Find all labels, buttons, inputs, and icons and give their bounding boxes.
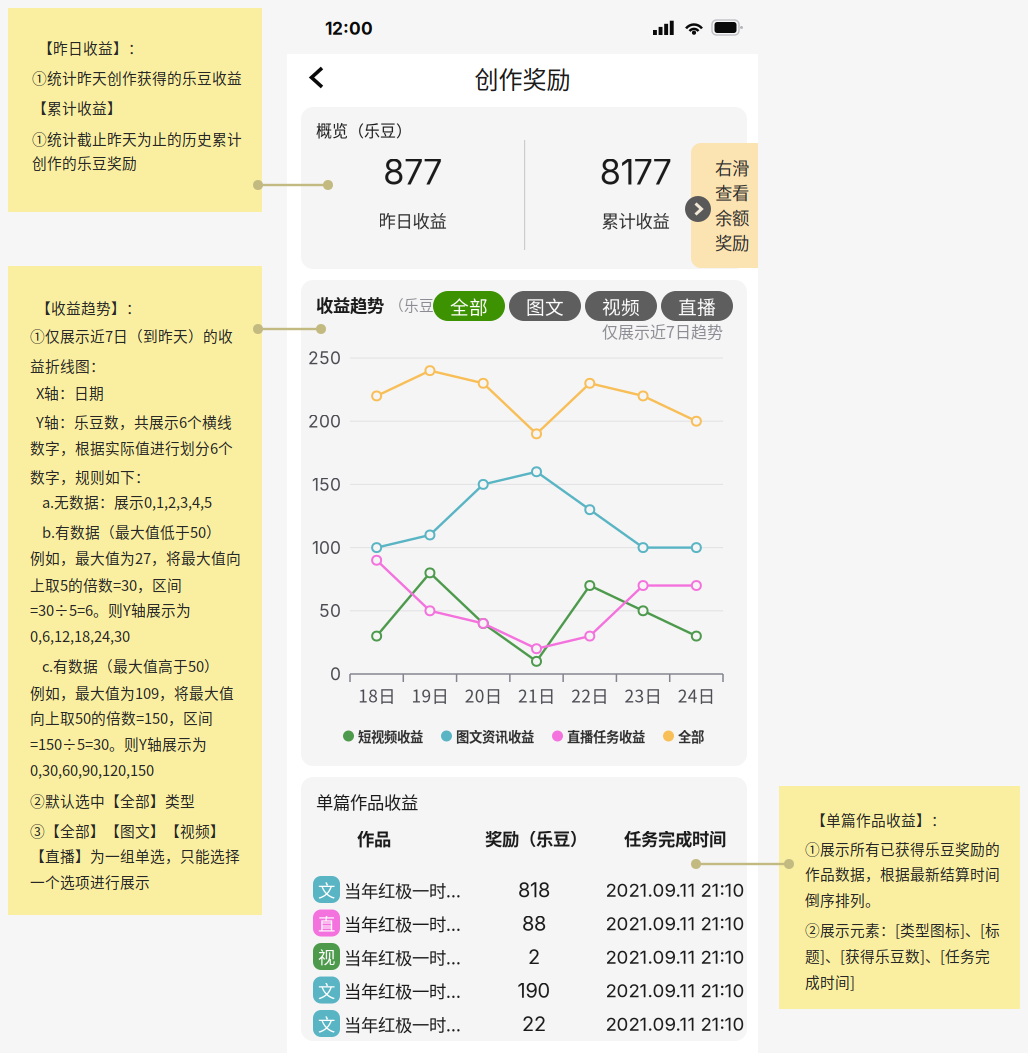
staticText: 当年红极一时... xyxy=(344,877,461,903)
staticText: 任务完成时间 xyxy=(624,825,726,851)
staticText: 收益趋势 xyxy=(316,292,384,317)
staticText: 仅展示近7日趋势 xyxy=(602,319,723,343)
staticText: 上取5的倍数=30，区间 xyxy=(30,574,182,595)
staticText: 2021.09.11 21:10 xyxy=(605,1013,744,1035)
button[interactable]: 全部 xyxy=(433,291,505,321)
staticText: 余额 xyxy=(715,204,749,230)
staticText: ②展示元素：[类型图标]、[标 xyxy=(805,919,1000,940)
staticText: 创作奖励 xyxy=(474,61,570,95)
staticText: a.无数据：展示0,1,2,3,4,5 xyxy=(30,491,212,512)
staticText: 190 xyxy=(517,978,550,1003)
staticText: 图文 xyxy=(526,292,564,319)
staticText: 数字，规则如下： xyxy=(30,466,150,487)
staticText: 一个选项进行展示 xyxy=(30,871,150,892)
staticText: X轴：日期 xyxy=(30,382,104,403)
staticText: 19日 xyxy=(411,682,448,708)
staticText: 18日 xyxy=(358,682,395,708)
staticText: 2021.09.11 21:10 xyxy=(605,946,744,968)
staticText: 877 xyxy=(383,151,441,193)
staticText: 查看 xyxy=(715,179,749,205)
staticText: 作品 xyxy=(357,825,391,851)
staticText: 22日 xyxy=(571,682,608,708)
staticText: 21日 xyxy=(518,682,555,708)
staticText: 创作的乐豆奖励 xyxy=(32,152,137,173)
staticText: b.有数据（最大值低于50） xyxy=(30,521,221,542)
staticText: （乐豆） xyxy=(389,294,449,315)
staticText: 0 xyxy=(330,663,341,684)
staticText: 作品数据，根据最新结算时间 xyxy=(805,863,1000,884)
staticText: 100 xyxy=(312,537,341,558)
staticText: 例如，最大值为27，将最大值向 xyxy=(30,547,241,568)
staticText: c.有数据（最大值高于50） xyxy=(30,655,219,676)
staticText: 0,6,12,18,24,30 xyxy=(30,625,130,646)
staticText: 当年红极一时... xyxy=(344,911,461,936)
staticText: 2021.09.11 21:10 xyxy=(605,912,744,935)
button[interactable]: 视频 xyxy=(585,291,657,321)
staticText: 视 xyxy=(318,944,335,969)
staticText: 当年红极一时... xyxy=(344,1011,461,1037)
staticText: 12:00 xyxy=(325,18,373,39)
staticText: 直播 xyxy=(678,292,716,319)
button[interactable]: 右滑查看余额奖励 xyxy=(691,143,758,268)
staticText: 22 xyxy=(522,1012,546,1036)
staticText: 数字，根据实际值进行划分6个 xyxy=(30,437,233,458)
staticText: 累计收益 xyxy=(601,207,669,233)
staticText: ①仅展示近7日（到昨天）的收 xyxy=(30,325,233,346)
staticText: 【收益趋势】： xyxy=(30,297,141,318)
staticText: 【累计收益】 xyxy=(32,97,122,118)
staticText: 全部 xyxy=(450,292,488,319)
staticText: 向上取50的倍数=150，区间 xyxy=(30,707,213,728)
staticText: 【直播】为一组单选，只能选择 xyxy=(30,845,240,866)
staticText: 2021.09.11 21:10 xyxy=(605,879,744,901)
staticText: 24日 xyxy=(678,682,715,708)
staticText: ①统计截止昨天为止的历史累计 xyxy=(32,128,242,149)
staticText: 文 xyxy=(318,977,335,1003)
staticText: ①统计昨天创作获得的乐豆收益 xyxy=(32,67,242,88)
staticText: 818 xyxy=(518,878,550,902)
staticText: 图文资讯收益 xyxy=(456,726,534,746)
staticText: 2021.09.11 21:10 xyxy=(605,979,744,1002)
staticText: 直 xyxy=(318,910,335,936)
button[interactable]: 图文 xyxy=(509,291,581,321)
staticText: 当年红极一时... xyxy=(344,944,461,970)
staticText: 23日 xyxy=(625,682,662,708)
staticText: 【单篇作品收益】： xyxy=(805,809,946,830)
staticText: 单篇作品收益 xyxy=(316,789,418,814)
staticText: 200 xyxy=(308,411,341,432)
staticText: 当年红极一时... xyxy=(344,978,461,1003)
staticText: 250 xyxy=(308,347,341,368)
button[interactable]: 返回 xyxy=(304,64,344,104)
staticText: 概览（乐豆） xyxy=(316,118,412,141)
staticText: 例如，最大值为109，将最大值 xyxy=(30,682,234,703)
staticText: 【昨日收益】： xyxy=(32,37,143,58)
staticText: ③【全部】【图文】【视频】 xyxy=(30,820,225,841)
staticText: 昨日收益 xyxy=(378,207,446,233)
staticText: ②默认选中【全部】类型 xyxy=(30,790,195,811)
staticText: 150 xyxy=(312,474,341,495)
staticText: 全部 xyxy=(678,726,704,746)
staticText: 奖励 xyxy=(715,229,749,255)
staticText: 视频 xyxy=(602,292,640,319)
staticText: 奖励（乐豆） xyxy=(485,825,587,851)
staticText: 0,30,60,90,120,150 xyxy=(30,759,154,780)
staticText: 50 xyxy=(319,600,341,621)
staticText: 文 xyxy=(318,1011,335,1036)
staticText: 倒序排列。 xyxy=(805,889,880,910)
staticText: 短视频收益 xyxy=(358,726,423,746)
staticText: 益折线图： xyxy=(30,355,105,376)
staticText: 8177 xyxy=(600,151,671,193)
staticText: 2 xyxy=(528,945,540,969)
staticText: 直播任务收益 xyxy=(567,726,645,746)
button[interactable]: 直播 xyxy=(661,291,733,321)
staticText: Y轴：乐豆数，共展示6个横线 xyxy=(30,411,232,432)
staticText: 文 xyxy=(318,877,335,902)
staticText: 88 xyxy=(522,911,546,936)
staticText: 右滑 xyxy=(715,154,749,180)
staticText: =30÷5=6。则Y轴展示为 xyxy=(30,599,191,620)
staticText: 题]、[获得乐豆数]、[任务完 xyxy=(805,945,990,966)
staticText: 成时间] xyxy=(805,971,855,992)
staticText: 20日 xyxy=(465,682,502,708)
staticText: ①展示所有已获得乐豆奖励的 xyxy=(805,838,1000,859)
staticText: =150÷5=30。则Y轴展示为 xyxy=(30,733,207,754)
